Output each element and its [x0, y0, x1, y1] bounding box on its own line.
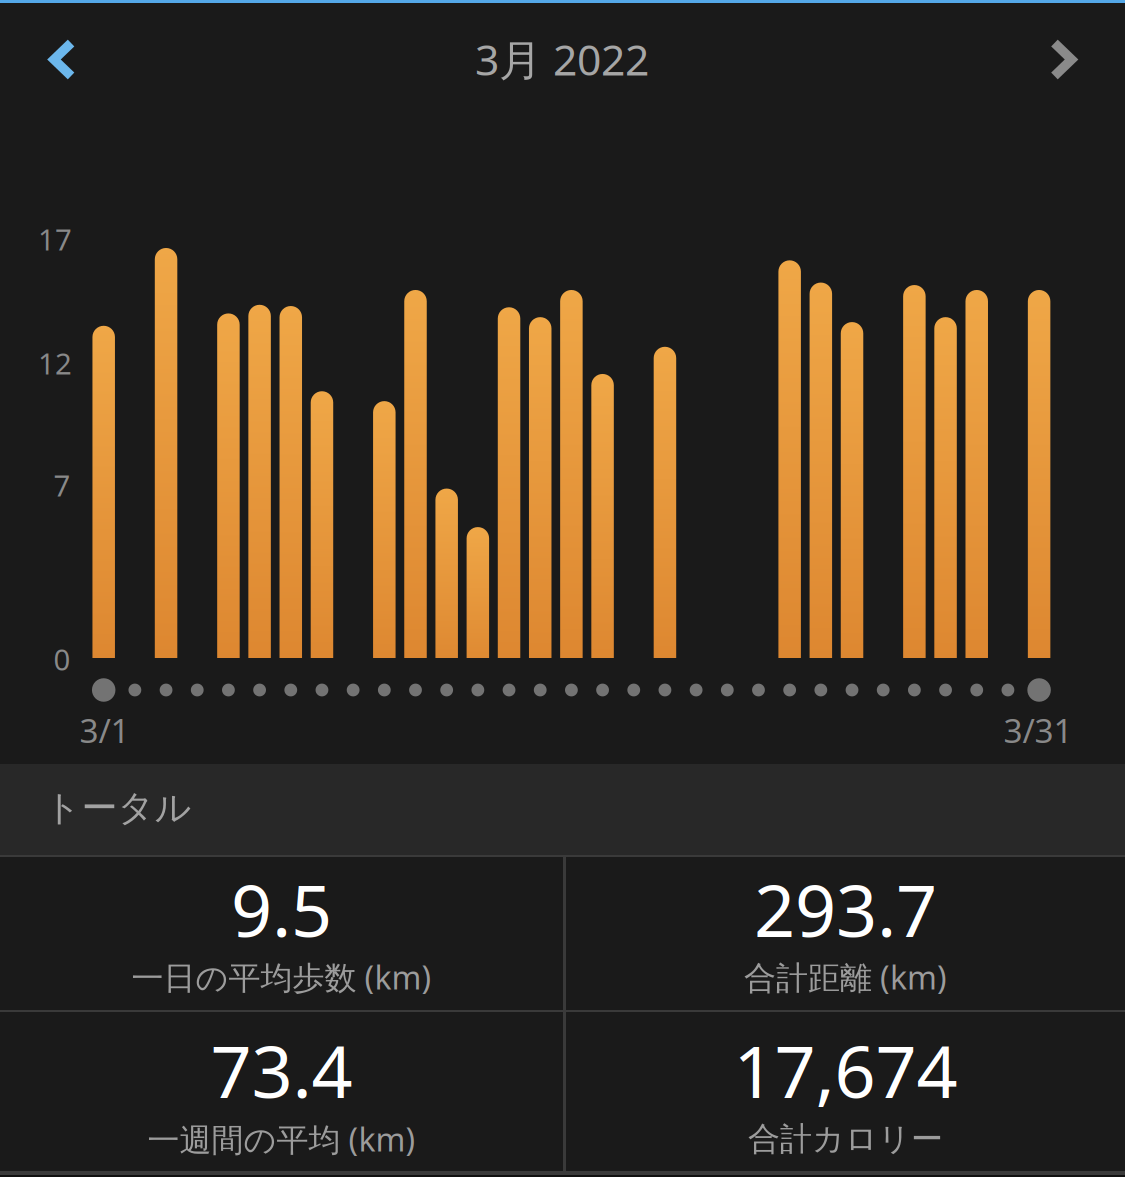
staticText: 9.5	[231, 861, 332, 957]
staticText: 3/1	[79, 708, 129, 752]
staticText: 合計カロリー	[748, 1119, 943, 1159]
staticText: 73.4	[210, 1022, 352, 1118]
staticText: 17	[38, 219, 72, 258]
staticText: 3月 2022	[475, 31, 649, 87]
staticText: 3/31	[1003, 708, 1072, 752]
staticText: 7	[53, 465, 70, 504]
staticText: 0	[53, 639, 70, 678]
staticText: 一週間の平均 (km)	[147, 1118, 415, 1160]
staticText: トータル	[44, 786, 191, 830]
staticText: 293.7	[754, 861, 937, 957]
button[interactable]: 前の月	[13, 13, 109, 109]
staticText: 12	[38, 343, 72, 382]
button[interactable]: 17,674	[566, 1012, 1125, 1171]
staticText: 合計距離 (km)	[744, 956, 947, 998]
button[interactable]: 73.4	[0, 1012, 563, 1171]
staticText: 17,674	[733, 1022, 957, 1118]
button[interactable]: 9.5	[0, 857, 563, 1010]
button[interactable]: 293.7	[566, 857, 1125, 1010]
staticText: 一日の平均歩数 (km)	[131, 956, 431, 998]
button[interactable]: 次の月	[1016, 13, 1112, 109]
